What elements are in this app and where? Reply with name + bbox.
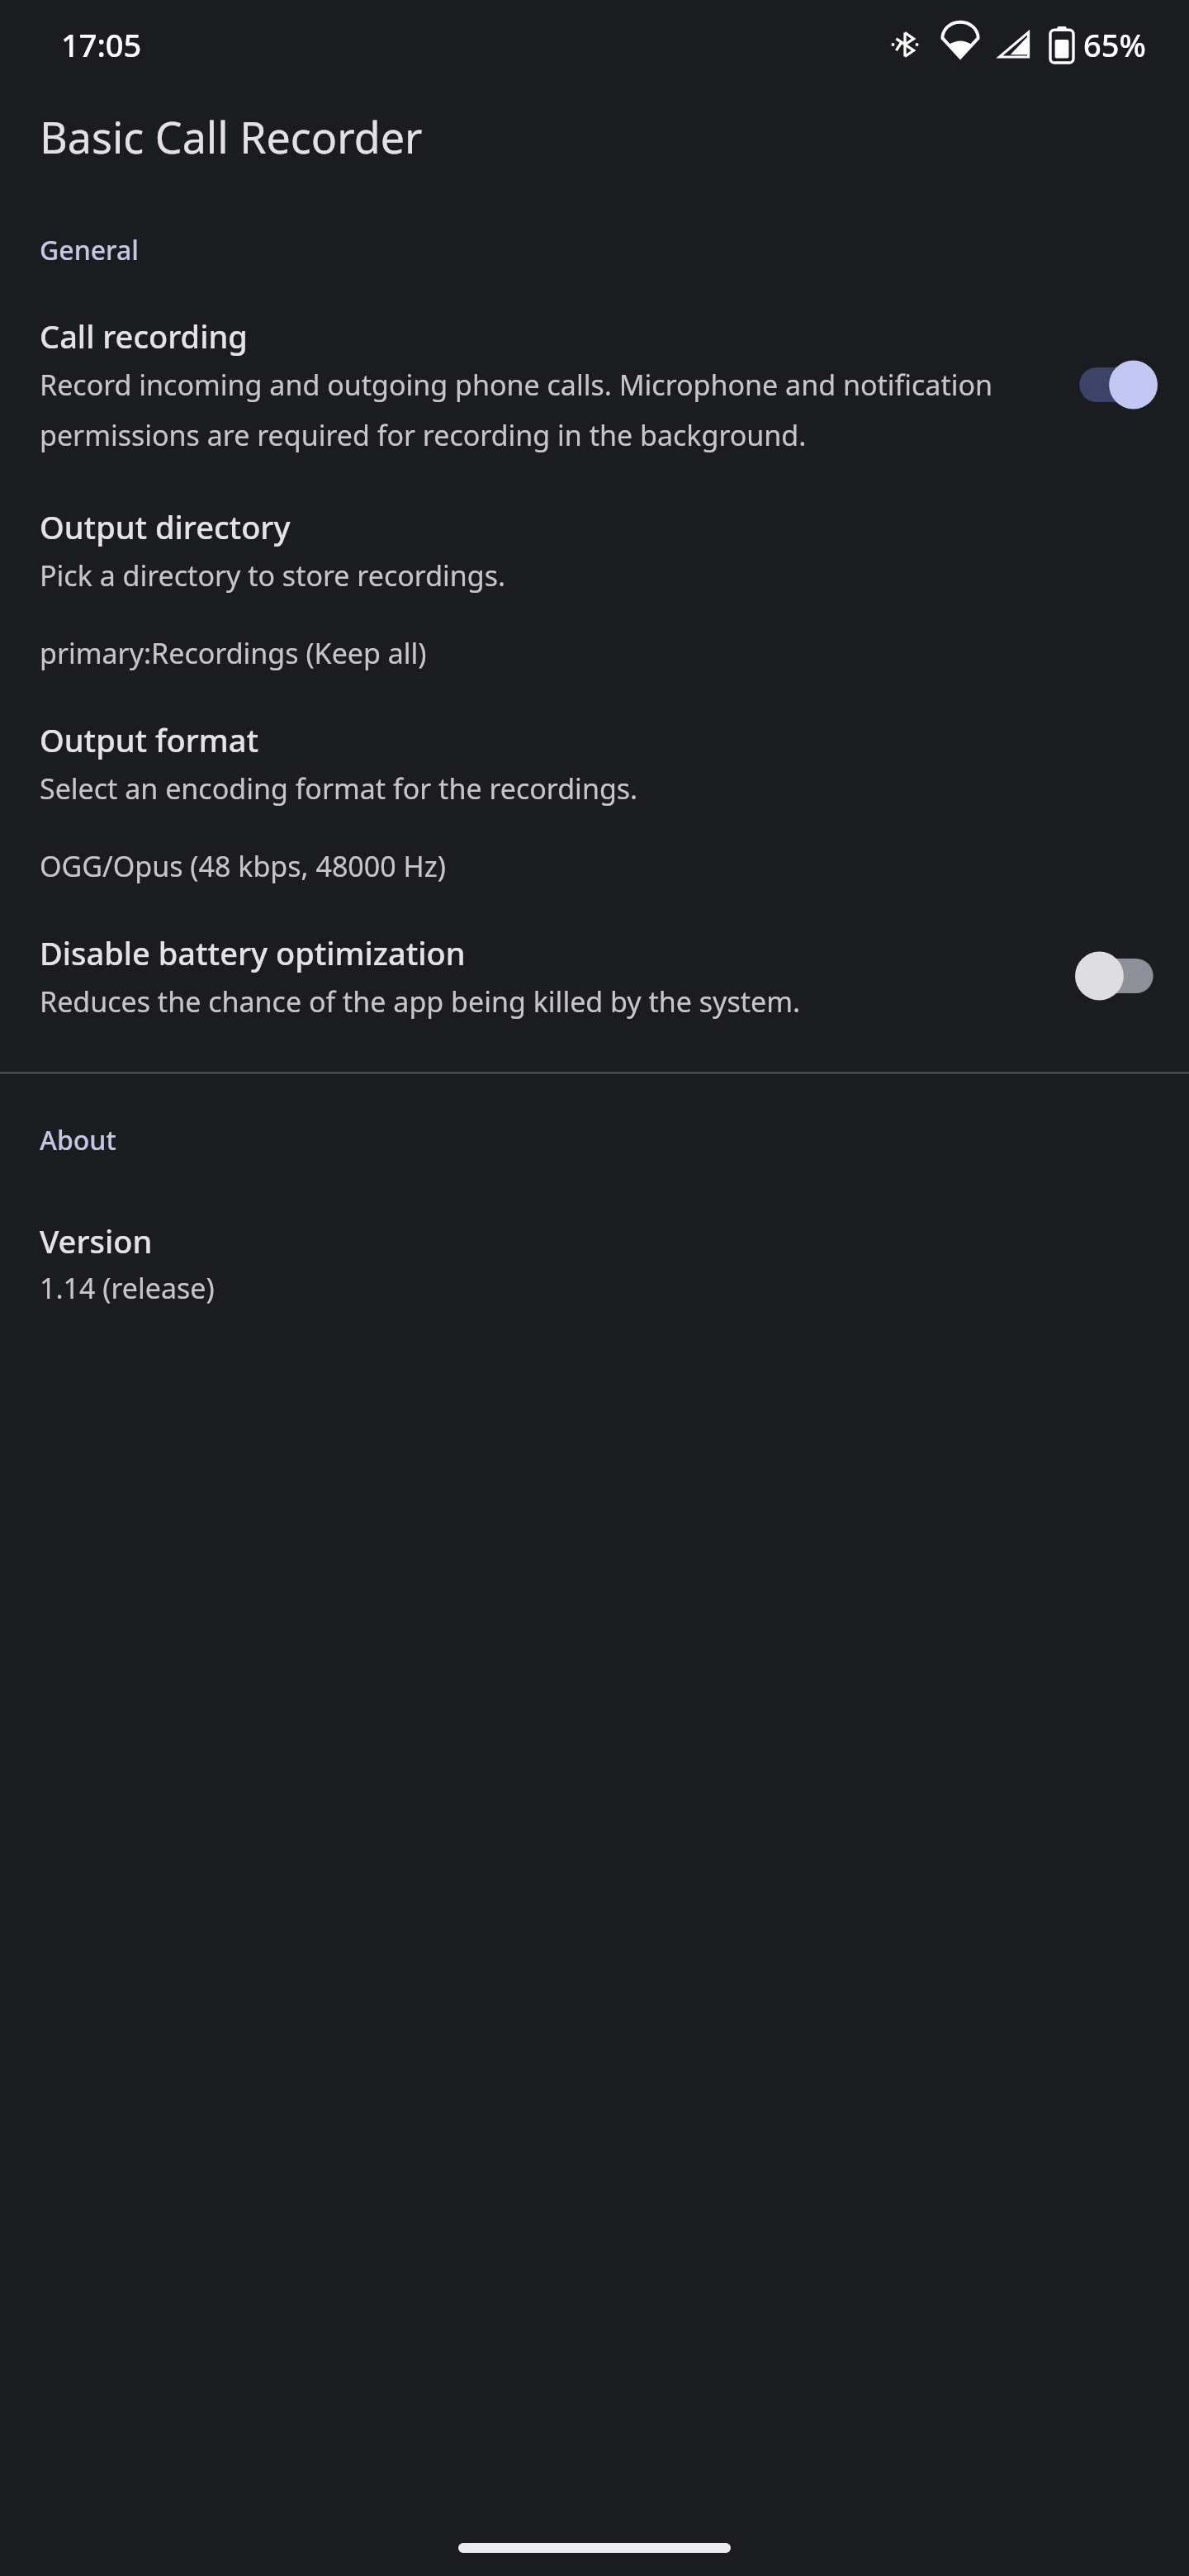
staticText: primary:Recordings (Keep all) <box>40 634 427 672</box>
staticText: Pick a directory to store recordings. <box>40 556 506 594</box>
button[interactable]: Call recording <box>0 315 1189 454</box>
staticText: Disable battery optimization <box>40 931 466 974</box>
button[interactable]: Off <box>1073 949 1159 1002</box>
button[interactable]: Version <box>0 1219 1189 1307</box>
staticText: 17:05 <box>61 23 142 66</box>
staticText: OGG/Opus (48 kbps, 48000 Hz) <box>40 847 446 885</box>
staticText: About <box>40 1122 116 1158</box>
button[interactable]: On <box>1073 358 1159 411</box>
staticText: Output directory <box>40 505 291 548</box>
button[interactable]: Output directory <box>0 505 1189 672</box>
staticText: Output format <box>40 718 259 761</box>
staticText: Record incoming and outgoing phone calls… <box>40 366 1040 454</box>
staticText: 65% <box>1083 23 1146 66</box>
staticText: Call recording <box>40 315 248 358</box>
button[interactable]: Output format <box>0 718 1189 885</box>
staticText: General <box>40 232 139 268</box>
staticText: Reduces the chance of the app being kill… <box>40 983 801 1020</box>
staticText: Basic Call Recorder <box>40 107 423 166</box>
button[interactable]: Disable battery optimization <box>0 931 1189 1020</box>
staticText: 1.14 (release) <box>40 1269 215 1307</box>
staticText: Version <box>40 1219 153 1262</box>
staticText: Select an encoding format for the record… <box>40 769 638 807</box>
